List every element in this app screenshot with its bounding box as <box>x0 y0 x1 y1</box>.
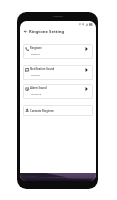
staticText: Ringtone <box>30 46 42 50</box>
staticText: Default <box>31 52 40 55</box>
button[interactable]: Ringtone <box>23 44 93 59</box>
button[interactable]: Alarm Sound <box>23 84 93 99</box>
button[interactable]: Play Notification Sound <box>85 68 88 72</box>
button[interactable]: Contacts Ringtone <box>23 105 93 116</box>
staticText: Contacts Ringtone <box>30 109 54 113</box>
button[interactable]: Play Alarm Sound <box>85 87 88 91</box>
staticText: Morning <box>31 92 42 95</box>
staticText: Notification Sound <box>30 67 55 71</box>
button[interactable]: Play Ringtone <box>85 47 88 51</box>
button[interactable]: Notification Sound <box>23 65 93 80</box>
staticText: Whistle <box>31 73 40 76</box>
staticText: Ringtone Setting <box>29 29 65 35</box>
button[interactable]: Back <box>24 30 27 33</box>
staticText: Alarm Sound <box>30 86 47 90</box>
